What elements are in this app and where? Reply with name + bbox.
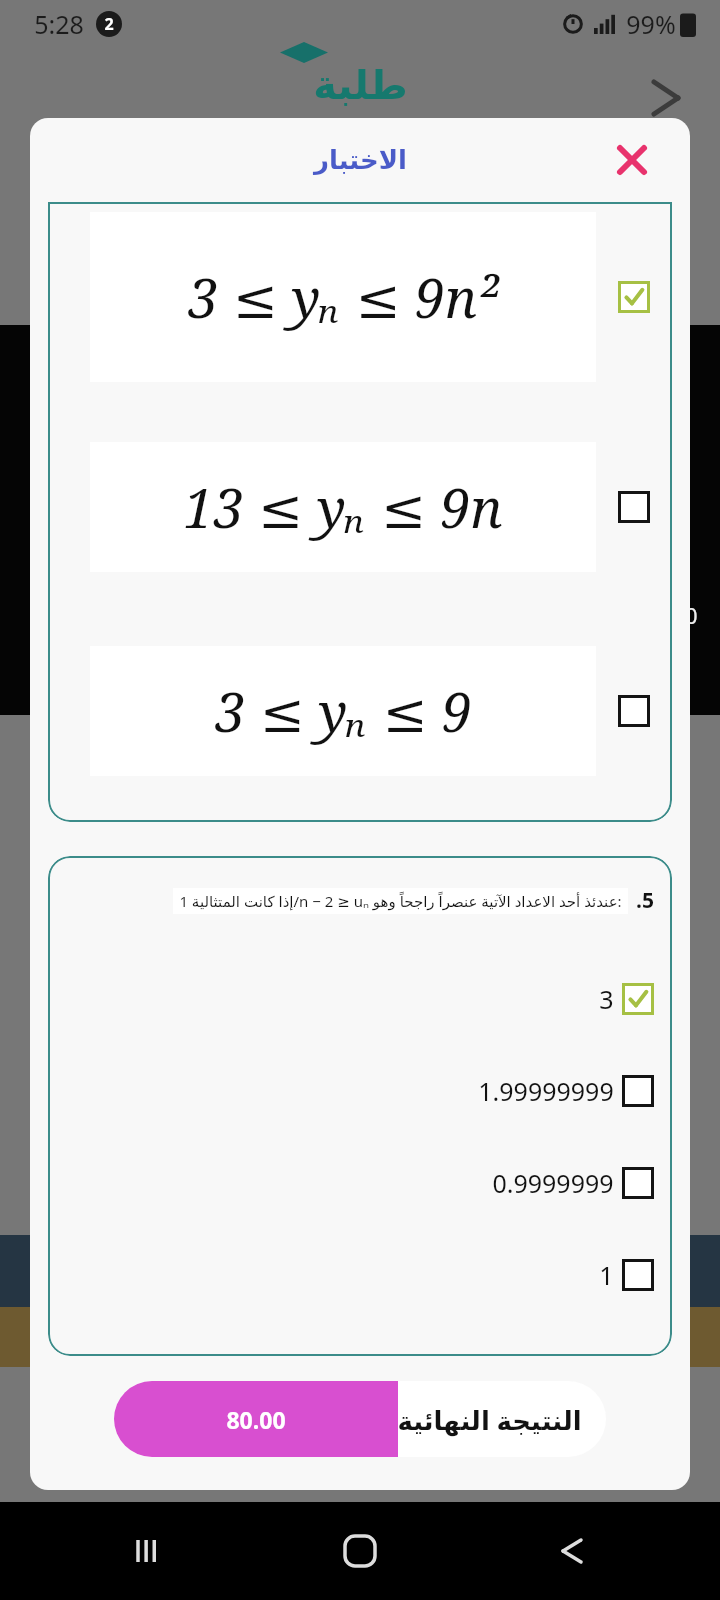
button[interactable]: Selected [618,281,650,313]
other: Next [650,78,684,118]
button[interactable]: Back [542,1521,602,1581]
staticText: 2 [104,13,114,35]
staticText: .5 [636,886,654,915]
staticText: الاختبار [314,145,407,175]
button[interactable]: Not selected [622,1167,654,1199]
staticText: 3 ≤ yₙ ≤ 9n² [188,260,499,334]
button[interactable]: 3 ≤ yₙ ≤ 9 [48,646,672,776]
button[interactable]: 1.99999999 [66,1069,654,1113]
staticText: 1 [599,1258,614,1292]
button[interactable]: Not selected [618,695,650,727]
staticText: 1.99999999 [478,1074,614,1108]
button[interactable]: Home [328,1519,392,1583]
staticText: النتيجة النهائية [397,1402,582,1437]
button[interactable]: Selected [622,983,654,1015]
button[interactable]: 3 ≤ yₙ ≤ 9n² [48,212,672,382]
staticText: طلبة [313,62,408,109]
button[interactable]: 3 [66,977,654,1021]
staticText: 3 ≤ yₙ ≤ 9 [215,674,472,748]
staticText: 99% [626,7,676,41]
button[interactable]: 13 ≤ yₙ ≤ 9n [48,442,672,572]
staticText: 0.9999999 [492,1166,614,1200]
button[interactable]: Not selected [618,491,650,523]
staticText: إذا كانت المتثالية 1/n − 2 ≥ uₙ عندئذ أح… [179,891,622,911]
staticText: 3 [599,982,614,1016]
staticText: 5:28 [34,7,84,41]
button[interactable]: 1 [66,1253,654,1297]
staticText: 80.00 [226,1404,286,1435]
button[interactable]: Recents [118,1521,178,1581]
button[interactable]: Not selected [622,1259,654,1291]
button[interactable]: 0.9999999 [66,1161,654,1205]
staticText: 00 [672,600,698,630]
button[interactable]: Not selected [622,1075,654,1107]
button[interactable]: 80.00 [114,1381,606,1457]
staticText: 13 ≤ yₙ ≤ 9n [183,470,503,544]
button[interactable]: Close [608,136,656,184]
